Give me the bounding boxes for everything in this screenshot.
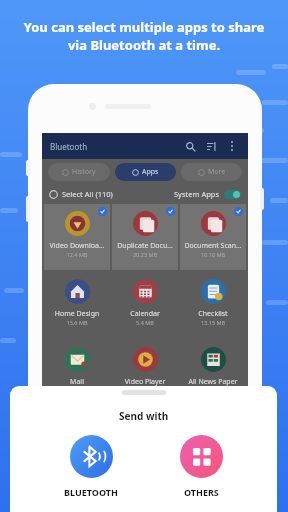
button[interactable]: Checklist — [180, 272, 246, 338]
staticText: 13.15 MB — [180, 319, 246, 326]
staticText: 5.4 MB — [112, 319, 178, 326]
button[interactable]: Search — [182, 138, 198, 154]
button[interactable]: Video Player — [112, 340, 178, 406]
staticText: Video Downloa… — [45, 241, 109, 251]
staticText: 16.20 MB — [112, 387, 178, 394]
staticText: All News Paper — [181, 377, 245, 387]
staticText: BLUETOOTH — [64, 486, 118, 498]
button[interactable]: BLUETOOTH — [56, 433, 126, 500]
button[interactable]: Calendar — [112, 272, 178, 338]
staticText: 10.10 MB — [180, 251, 246, 258]
staticText: Document Scan… — [181, 241, 245, 251]
button[interactable]: System apps toggle — [224, 190, 241, 199]
staticText: Video Player — [113, 377, 177, 387]
button[interactable]: All News Paper — [180, 340, 246, 406]
button[interactable]: More — [181, 163, 242, 181]
staticText: OTHERS — [184, 486, 219, 498]
staticText: Bluetooth — [50, 141, 88, 152]
staticText: Calendar — [113, 309, 177, 319]
staticText: History — [72, 167, 96, 177]
staticText: Send with — [119, 409, 169, 423]
button[interactable]: Mail — [44, 340, 110, 406]
button[interactable]: Duplicate Docu… — [112, 204, 178, 270]
button[interactable]: Select All (110) — [49, 189, 113, 199]
staticText: 20.23 MB — [112, 251, 178, 258]
staticText: Apps — [142, 167, 159, 177]
staticText: 15.6 MB — [44, 319, 110, 326]
staticText: You can select multiple apps to share vi… — [8, 18, 280, 54]
button[interactable]: OTHERS — [172, 433, 231, 500]
staticText: Duplicate Docu… — [113, 241, 177, 251]
button[interactable]: Sort — [203, 138, 219, 154]
button[interactable]: Apps — [115, 163, 176, 181]
staticText: Mail — [45, 377, 109, 387]
button[interactable]: Video Downloa… — [44, 204, 110, 270]
button[interactable]: History — [48, 163, 110, 181]
button[interactable]: More options — [224, 138, 240, 154]
staticText: More — [208, 167, 226, 177]
button[interactable]: Home Design — [44, 272, 110, 338]
button[interactable]: Document Scan… — [180, 204, 246, 270]
staticText: 12.4 MB — [44, 251, 110, 258]
staticText: Home Design — [45, 309, 109, 319]
staticText: Checklist — [181, 309, 245, 319]
staticText: System Apps — [174, 189, 220, 199]
staticText: Select All (110) — [62, 189, 113, 199]
